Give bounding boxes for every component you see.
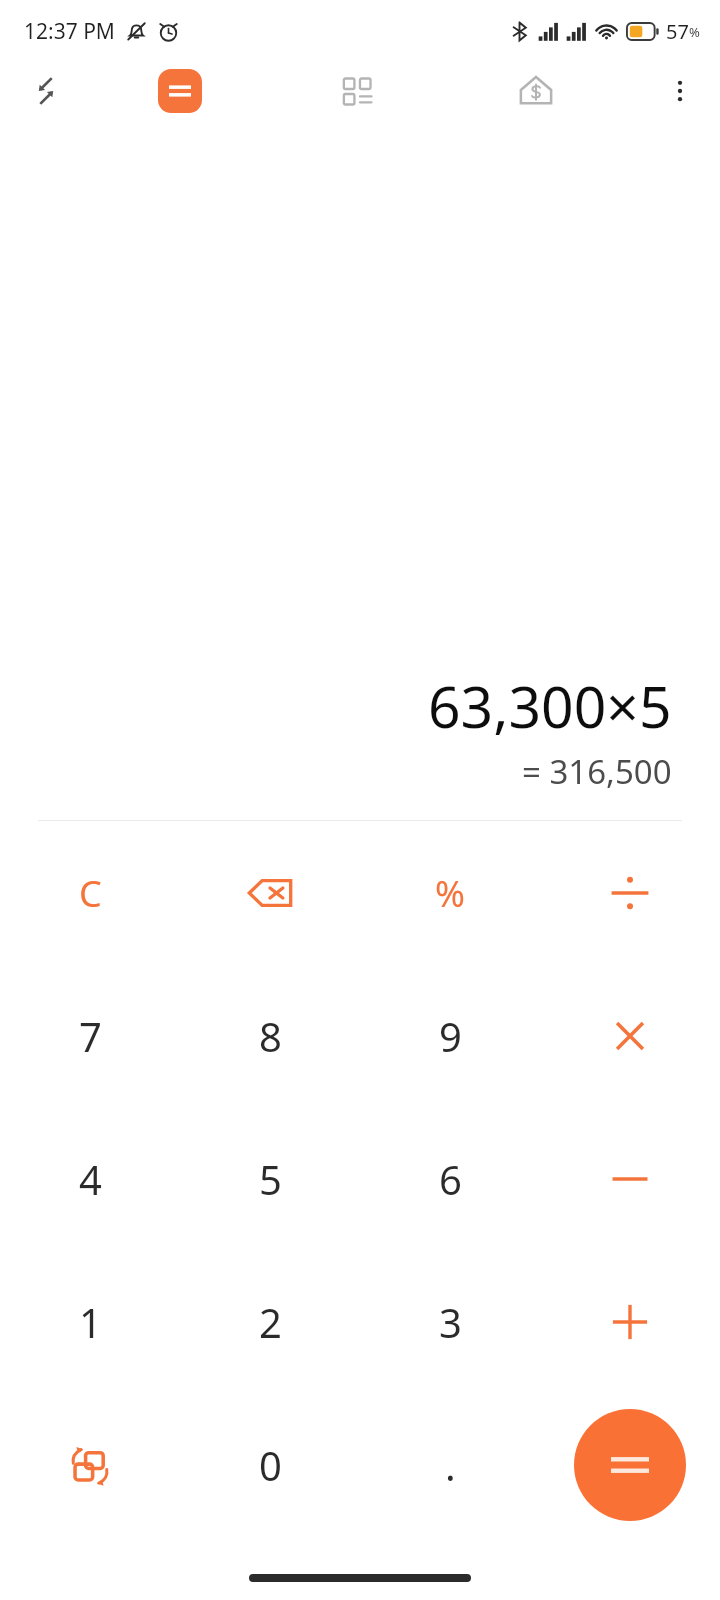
staticText: 8 — [259, 1009, 282, 1063]
button[interactable]: Convert — [42, 1417, 138, 1513]
button[interactable]: . — [402, 1417, 498, 1513]
button[interactable]: Multiply — [582, 988, 678, 1084]
staticText: 63,300×5 — [428, 667, 672, 745]
staticText: 6 — [439, 1152, 462, 1206]
button[interactable]: C — [42, 845, 138, 941]
button[interactable]: Collapse — [20, 65, 72, 117]
button[interactable]: Minus — [582, 1131, 678, 1227]
staticText: 7 — [79, 1009, 102, 1063]
staticText: 3 — [439, 1295, 462, 1349]
button[interactable]: Mortgage — [509, 64, 563, 118]
button[interactable]: 0 — [222, 1417, 318, 1513]
staticText: % — [435, 869, 465, 918]
staticText: = 316,500 — [522, 749, 672, 794]
button[interactable]: 9 — [402, 988, 498, 1084]
button[interactable]: Tools — [330, 64, 384, 118]
button[interactable]: 4 — [42, 1131, 138, 1227]
button[interactable]: 5 — [222, 1131, 318, 1227]
staticText: % — [689, 23, 700, 41]
staticText: 9 — [439, 1009, 462, 1063]
button[interactable]: Divide — [582, 845, 678, 941]
button[interactable]: 8 — [222, 988, 318, 1084]
button[interactable]: 6 — [402, 1131, 498, 1227]
button[interactable]: Backspace — [222, 845, 318, 941]
button[interactable]: 7 — [42, 988, 138, 1084]
staticText: 5 — [259, 1152, 282, 1206]
button[interactable]: 3 — [402, 1274, 498, 1370]
staticText: 12:37 PM — [24, 17, 115, 46]
staticText: . — [445, 1438, 456, 1492]
staticText: 0 — [259, 1438, 282, 1492]
button[interactable]: 1 — [42, 1274, 138, 1370]
staticText: C — [79, 869, 102, 918]
button[interactable]: Equals — [574, 1409, 686, 1521]
button[interactable]: Calculator — [158, 69, 202, 113]
staticText: 1 — [79, 1295, 102, 1349]
button[interactable]: 2 — [222, 1274, 318, 1370]
staticText: 57 — [666, 18, 689, 45]
button[interactable]: Plus — [582, 1274, 678, 1370]
button[interactable]: % — [402, 845, 498, 941]
button[interactable]: More options — [654, 65, 706, 117]
staticText: 4 — [79, 1152, 102, 1206]
staticText: 2 — [259, 1295, 282, 1349]
